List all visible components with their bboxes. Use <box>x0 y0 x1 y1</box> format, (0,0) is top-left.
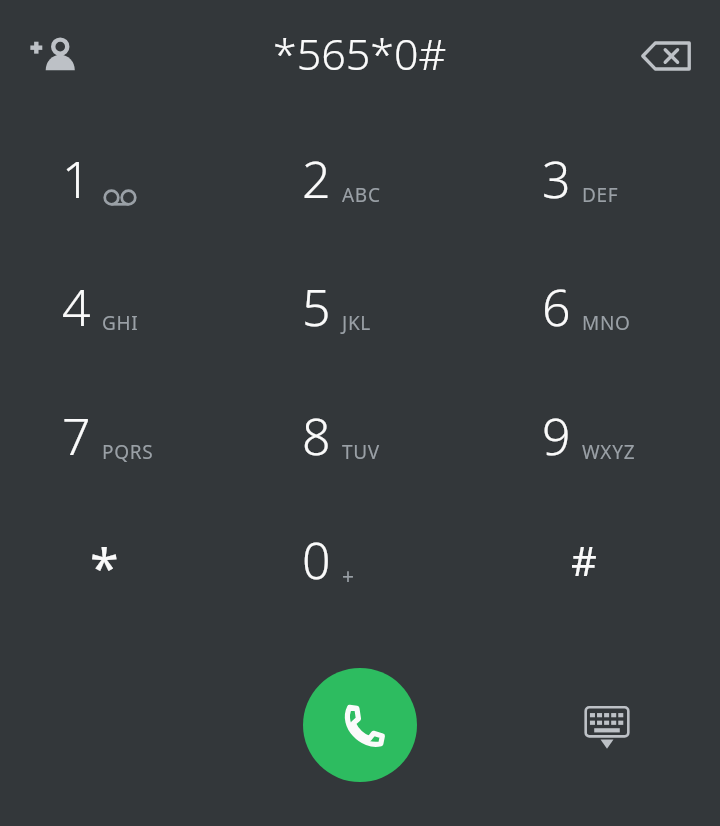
staticText: 7 <box>62 402 91 470</box>
button[interactable]: 3 <box>480 115 720 243</box>
staticText: GHI <box>102 310 139 336</box>
button[interactable]: 7 <box>0 372 240 500</box>
staticText: ABC <box>342 182 381 208</box>
staticText: 1 <box>62 145 91 213</box>
staticText: 3 <box>542 145 571 213</box>
staticText: 0 <box>302 526 331 594</box>
staticText: 2 <box>302 145 331 213</box>
button[interactable]: 1 <box>0 115 240 243</box>
staticText: + <box>342 562 355 591</box>
staticText: PQRS <box>102 439 154 465</box>
button[interactable]: 5 <box>240 243 480 371</box>
staticText: 8 <box>302 402 331 470</box>
button[interactable]: 6 <box>480 243 720 371</box>
button[interactable]: 2 <box>240 115 480 243</box>
button[interactable]: 8 <box>240 372 480 500</box>
staticText: * <box>90 531 119 602</box>
staticText: *565*0# <box>273 24 447 83</box>
button[interactable]: Add contact <box>12 14 96 98</box>
button[interactable]: 0 <box>240 496 480 624</box>
button[interactable]: * <box>0 496 240 624</box>
staticText: TUV <box>342 439 380 465</box>
button[interactable]: Backspace <box>624 14 708 98</box>
staticText: 9 <box>542 402 571 470</box>
button[interactable]: # <box>480 496 720 624</box>
staticText: 4 <box>62 273 91 341</box>
staticText: JKL <box>342 310 372 336</box>
button[interactable]: Hide keypad <box>567 687 647 767</box>
staticText: WXYZ <box>582 439 636 465</box>
staticText: DEF <box>582 182 619 208</box>
button[interactable]: Call <box>303 668 417 782</box>
staticText: # <box>571 533 597 587</box>
button[interactable]: 9 <box>480 372 720 500</box>
staticText: MNO <box>582 310 631 336</box>
staticText: 5 <box>302 273 331 341</box>
staticText: 6 <box>542 273 571 341</box>
button[interactable]: 4 <box>0 243 240 371</box>
